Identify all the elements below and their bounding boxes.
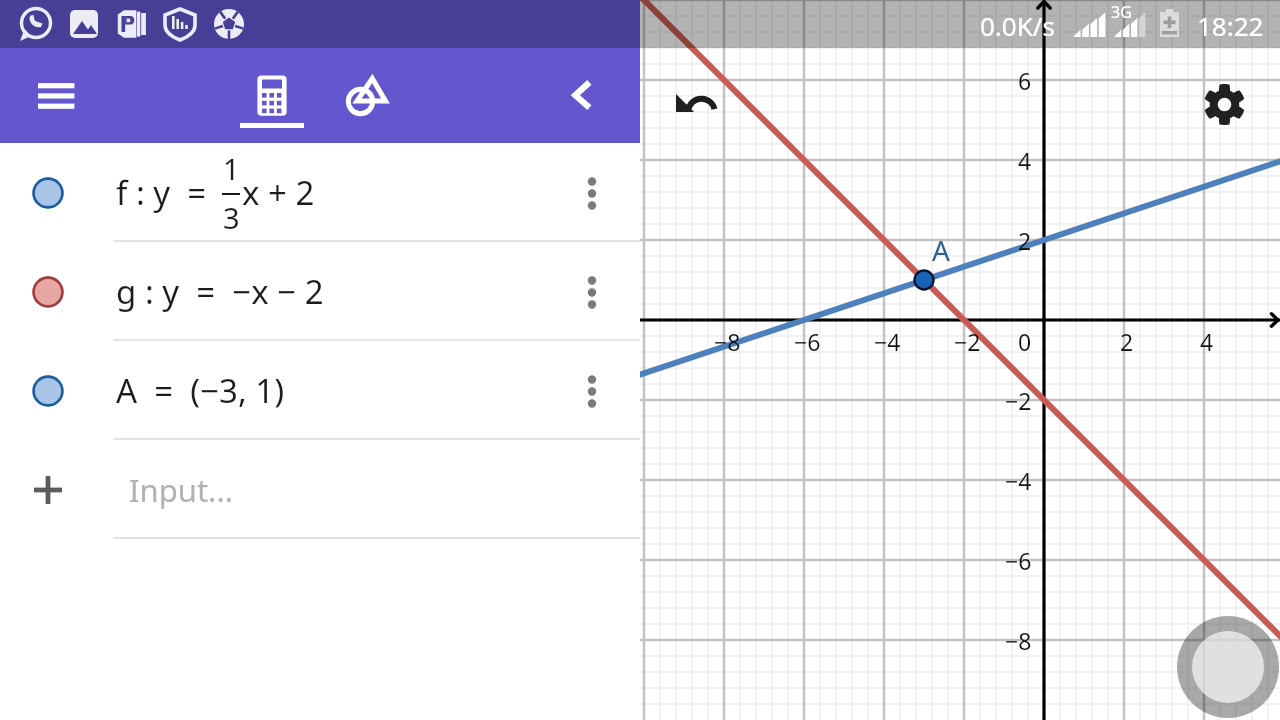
button[interactable]: Undo — [656, 74, 728, 132]
button[interactable]: Algebra view — [232, 48, 312, 143]
button[interactable]: Pan control — [1177, 616, 1279, 718]
button[interactable]: f : y = — [0, 143, 640, 242]
button[interactable]: More options — [568, 367, 616, 415]
staticText: A = (−3, 1) — [116, 368, 285, 413]
staticText: f : y = — [116, 170, 224, 215]
staticText: 4 — [1018, 145, 1032, 176]
staticText: −8 — [714, 326, 741, 357]
staticText: −6 — [1005, 545, 1032, 576]
button[interactable]: Collapse panel — [556, 48, 612, 143]
staticText: 0 — [1018, 326, 1032, 357]
staticText: 4 — [1200, 326, 1214, 357]
button[interactable]: Settings — [1195, 75, 1253, 133]
staticText: −4 — [1005, 465, 1032, 496]
staticText: 18:22 — [1197, 8, 1264, 40]
staticText: 0.0K/s — [980, 8, 1055, 40]
staticText: 3G — [1111, 1, 1132, 23]
button[interactable]: A = (−3, 1) — [0, 341, 640, 440]
staticText: 3 — [223, 198, 240, 237]
staticText: 6 — [1018, 65, 1032, 96]
staticText: −8 — [1005, 625, 1032, 656]
button[interactable]: Menu — [22, 48, 90, 143]
staticText: A — [932, 231, 950, 269]
staticText: Input... — [129, 469, 234, 511]
button[interactable]: Add input — [24, 466, 72, 514]
button[interactable]: g : y = −x − 2 — [0, 242, 640, 341]
staticText: −4 — [874, 326, 901, 357]
staticText: −2 — [954, 326, 981, 357]
staticText: x + 2 — [242, 170, 315, 215]
staticText: g : y = −x − 2 — [116, 269, 324, 314]
staticText: −6 — [794, 326, 821, 357]
staticText: 2 — [1120, 326, 1134, 357]
staticText: −2 — [1005, 385, 1032, 416]
staticText: 2 — [1018, 225, 1032, 256]
button[interactable]: More options — [568, 169, 616, 217]
button[interactable]: Add input — [0, 440, 640, 539]
button[interactable]: Geometry view — [325, 48, 400, 143]
staticText: 1 — [223, 149, 240, 188]
button[interactable]: More options — [568, 268, 616, 316]
